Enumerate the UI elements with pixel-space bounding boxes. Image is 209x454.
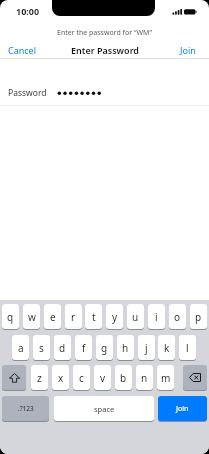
button[interactable]: Cancel [8,44,37,56]
button[interactable]: s [33,335,50,360]
staticText: f [82,341,86,355]
staticText: .?123 [18,404,34,413]
staticText: q [7,310,14,324]
staticText: o [174,310,181,324]
staticText: Enter the password for “WM” [57,28,152,38]
staticText: s [39,341,44,355]
button[interactable]: l [179,335,196,360]
button[interactable]: Password [8,87,47,99]
staticText: k [164,341,170,355]
staticText: e [50,310,56,324]
button[interactable]: u [127,304,144,329]
button[interactable] [2,365,26,390]
staticText: m [161,371,171,385]
staticText: l [186,341,189,355]
button[interactable]: k [158,335,175,360]
button[interactable]: m [157,365,174,390]
staticText: Join [176,404,189,414]
staticText: v [100,371,106,385]
staticText: x [58,371,64,385]
button[interactable]: a [12,335,29,360]
button[interactable]: j [138,335,155,360]
staticText: c [79,371,84,385]
button[interactable]: v [94,365,111,390]
staticText: h [122,341,129,355]
staticText: 10:00 [16,5,40,17]
staticText: Cancel [8,44,37,56]
button[interactable]: p [190,304,207,329]
staticText: Enter Password [71,44,139,56]
button[interactable]: c [73,365,90,390]
button[interactable]: d [54,335,71,360]
button[interactable]: g [96,335,113,360]
button[interactable]: t [85,304,102,329]
button[interactable]: z [31,365,48,390]
staticText: t [92,310,96,324]
staticText: d [59,341,66,355]
staticText: y [112,310,118,324]
button[interactable]: w [23,304,40,329]
button[interactable] [183,365,207,390]
staticText: Password [8,87,47,99]
staticText: w [28,310,36,324]
button[interactable]: space [54,396,154,421]
button[interactable]: f [75,335,92,360]
button[interactable]: e [44,304,61,329]
staticText: r [71,310,76,324]
staticText: j [145,341,148,355]
staticText: Join [180,44,196,56]
button[interactable]: y [106,304,123,329]
staticText: a [18,341,24,355]
button[interactable]: i [148,304,165,329]
staticText: space [94,404,115,414]
button[interactable]: o [169,304,186,329]
staticText: b [120,371,127,385]
staticText: n [141,371,148,385]
button[interactable]: h [117,335,134,360]
button[interactable]: x [52,365,69,390]
staticText: p [195,310,202,324]
button[interactable]: n [136,365,153,390]
staticText: z [37,371,42,385]
button[interactable]: b [115,365,132,390]
staticText: g [101,341,108,355]
button[interactable]: r [65,304,82,329]
staticText: u [132,310,139,324]
button[interactable]: .?123 [2,396,49,421]
staticText: i [155,310,158,324]
button[interactable]: Join [158,396,207,421]
button[interactable]: q [2,304,19,329]
button[interactable]: Join [180,44,196,56]
